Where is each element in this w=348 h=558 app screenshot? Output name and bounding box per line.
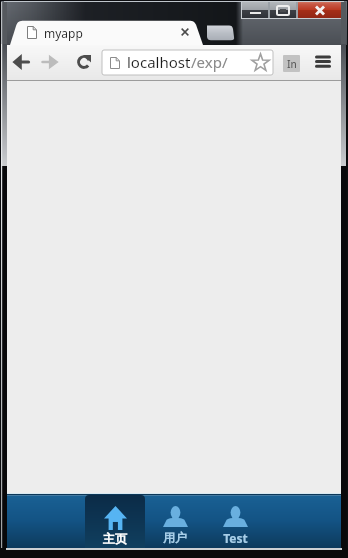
staticText: 主页	[103, 531, 127, 546]
staticText: myapp	[44, 25, 83, 41]
staticText: In	[287, 57, 297, 71]
staticText: /exp/	[191, 52, 228, 72]
button[interactable]: Extension	[283, 55, 300, 72]
staticText: localhost	[127, 52, 191, 72]
button[interactable]: Forward	[40, 47, 70, 77]
button[interactable]: Minimize	[242, 1, 268, 19]
button[interactable]: Menu	[314, 53, 333, 72]
button[interactable]: Reload	[69, 47, 99, 77]
button[interactable]: localhost	[102, 50, 273, 75]
button[interactable]: Test	[205, 493, 265, 548]
staticText: Test	[223, 530, 248, 546]
button[interactable]: Close tab	[179, 26, 191, 38]
button[interactable]: Bookmark	[251, 53, 270, 72]
button[interactable]: Maximize	[270, 1, 296, 19]
button[interactable]: 用户	[145, 493, 205, 548]
button[interactable]: 主页	[85, 495, 145, 548]
staticText: 用户	[163, 530, 187, 545]
button[interactable]: Back	[11, 47, 41, 77]
button[interactable]: Close	[298, 1, 342, 19]
